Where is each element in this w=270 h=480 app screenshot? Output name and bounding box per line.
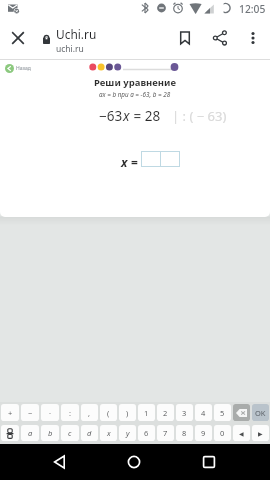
button[interactable]: + [1,404,19,421]
button[interactable]: x [100,425,117,441]
button[interactable]: Close [3,23,33,53]
staticText: ▶ [258,430,263,437]
button[interactable]: , [81,404,98,421]
button[interactable]: 8 [176,425,193,441]
staticText: 5 [220,408,225,418]
staticText: 12:05 [239,2,266,16]
staticText: OK [255,408,266,418]
staticText: ) [126,408,129,418]
staticText: −63 [99,107,123,125]
button[interactable] [233,404,250,421]
staticText: y [126,428,130,438]
staticText: ax = b при a = −63, b = 28 [99,90,171,99]
staticText: , [88,408,91,418]
staticText: c [68,428,72,438]
button[interactable] [1,425,19,441]
staticText: ( [107,408,110,418]
staticText: = [128,154,138,170]
button[interactable]: : [61,404,79,421]
button[interactable]: · [41,404,59,421]
button[interactable]: OK [252,404,269,421]
button[interactable]: Home [119,447,149,477]
button[interactable]: 3 [176,404,193,421]
button[interactable]: 1 [138,404,155,421]
staticText: Uchi.ru [56,26,97,42]
button[interactable]: ◀ [233,425,250,441]
button[interactable]: c [61,425,79,441]
staticText: 6 [144,428,149,438]
staticText: x [107,428,111,438]
staticText: + [8,408,13,418]
staticText: uchi.ru [56,43,84,55]
button[interactable]: Recent apps [194,447,224,477]
staticText: x [121,154,128,170]
staticText: 2 [163,408,168,418]
staticText: 0 [220,428,225,438]
button[interactable]: 9 [195,425,212,441]
button[interactable]: 6 [138,425,155,441]
button[interactable]: Назад [5,64,31,73]
staticText: 1 [144,408,149,418]
button[interactable]: ▶ [252,425,269,441]
staticText: : [69,408,72,418]
staticText: Реши уравнение [94,76,177,89]
button[interactable]: ( [100,404,117,421]
staticText: 3 [182,408,187,418]
staticText: 9 [201,428,206,438]
button[interactable]: 0 [214,425,231,441]
staticText: 4 [201,408,206,418]
staticText: b [48,428,53,438]
staticText: a [28,428,33,438]
button[interactable]: − [21,404,39,421]
staticText: 7 [163,428,168,438]
button[interactable]: b [41,425,59,441]
button[interactable]: 5 [214,404,231,421]
button[interactable]: Bookmark [170,23,200,53]
button[interactable]: d [81,425,98,441]
staticText: ◀ [239,430,244,437]
staticText: = 28 [130,107,161,125]
staticText: d [87,428,92,438]
button[interactable]: 7 [157,425,174,441]
button[interactable]: 4 [195,404,212,421]
button[interactable]: More options [238,23,268,53]
button[interactable]: y [119,425,136,441]
button[interactable]: ) [119,404,136,421]
staticText: x [123,107,130,125]
staticText: 8 [182,428,187,438]
staticText: − [28,408,33,418]
button[interactable]: Share [205,23,235,53]
staticText: | : ( − 63) [172,107,227,125]
staticText: · [49,408,52,418]
button[interactable]: 2 [157,404,174,421]
button[interactable]: Back [45,447,75,477]
staticText: Назад [16,65,31,72]
button[interactable]: a [21,425,39,441]
